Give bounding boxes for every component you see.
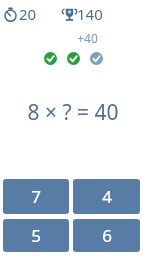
button[interactable]: Timer	[3, 4, 37, 24]
button[interactable]: 5	[3, 219, 69, 252]
button[interactable]: 7	[3, 179, 69, 214]
other: Answered correctly	[67, 52, 80, 65]
staticText: 140	[77, 4, 103, 24]
staticText: 20	[19, 4, 37, 24]
staticText: 7	[31, 185, 41, 208]
button[interactable]: 6	[73, 219, 140, 252]
staticText: +40	[77, 30, 98, 46]
other: Answered correctly	[90, 52, 103, 65]
staticText: 6	[102, 224, 112, 247]
button[interactable]: Score	[62, 4, 103, 24]
other: Timer	[3, 7, 18, 22]
other: Score	[62, 7, 77, 22]
button[interactable]: 4	[73, 179, 140, 214]
other: Answered correctly	[44, 52, 57, 65]
staticText: 4	[102, 185, 112, 208]
staticText: 5	[31, 224, 41, 247]
staticText: 8 × ? = 40	[27, 98, 119, 127]
